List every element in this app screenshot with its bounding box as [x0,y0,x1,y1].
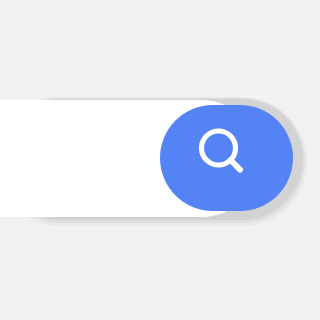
button[interactable] [0,100,260,217]
button[interactable]: Search [160,105,293,211]
